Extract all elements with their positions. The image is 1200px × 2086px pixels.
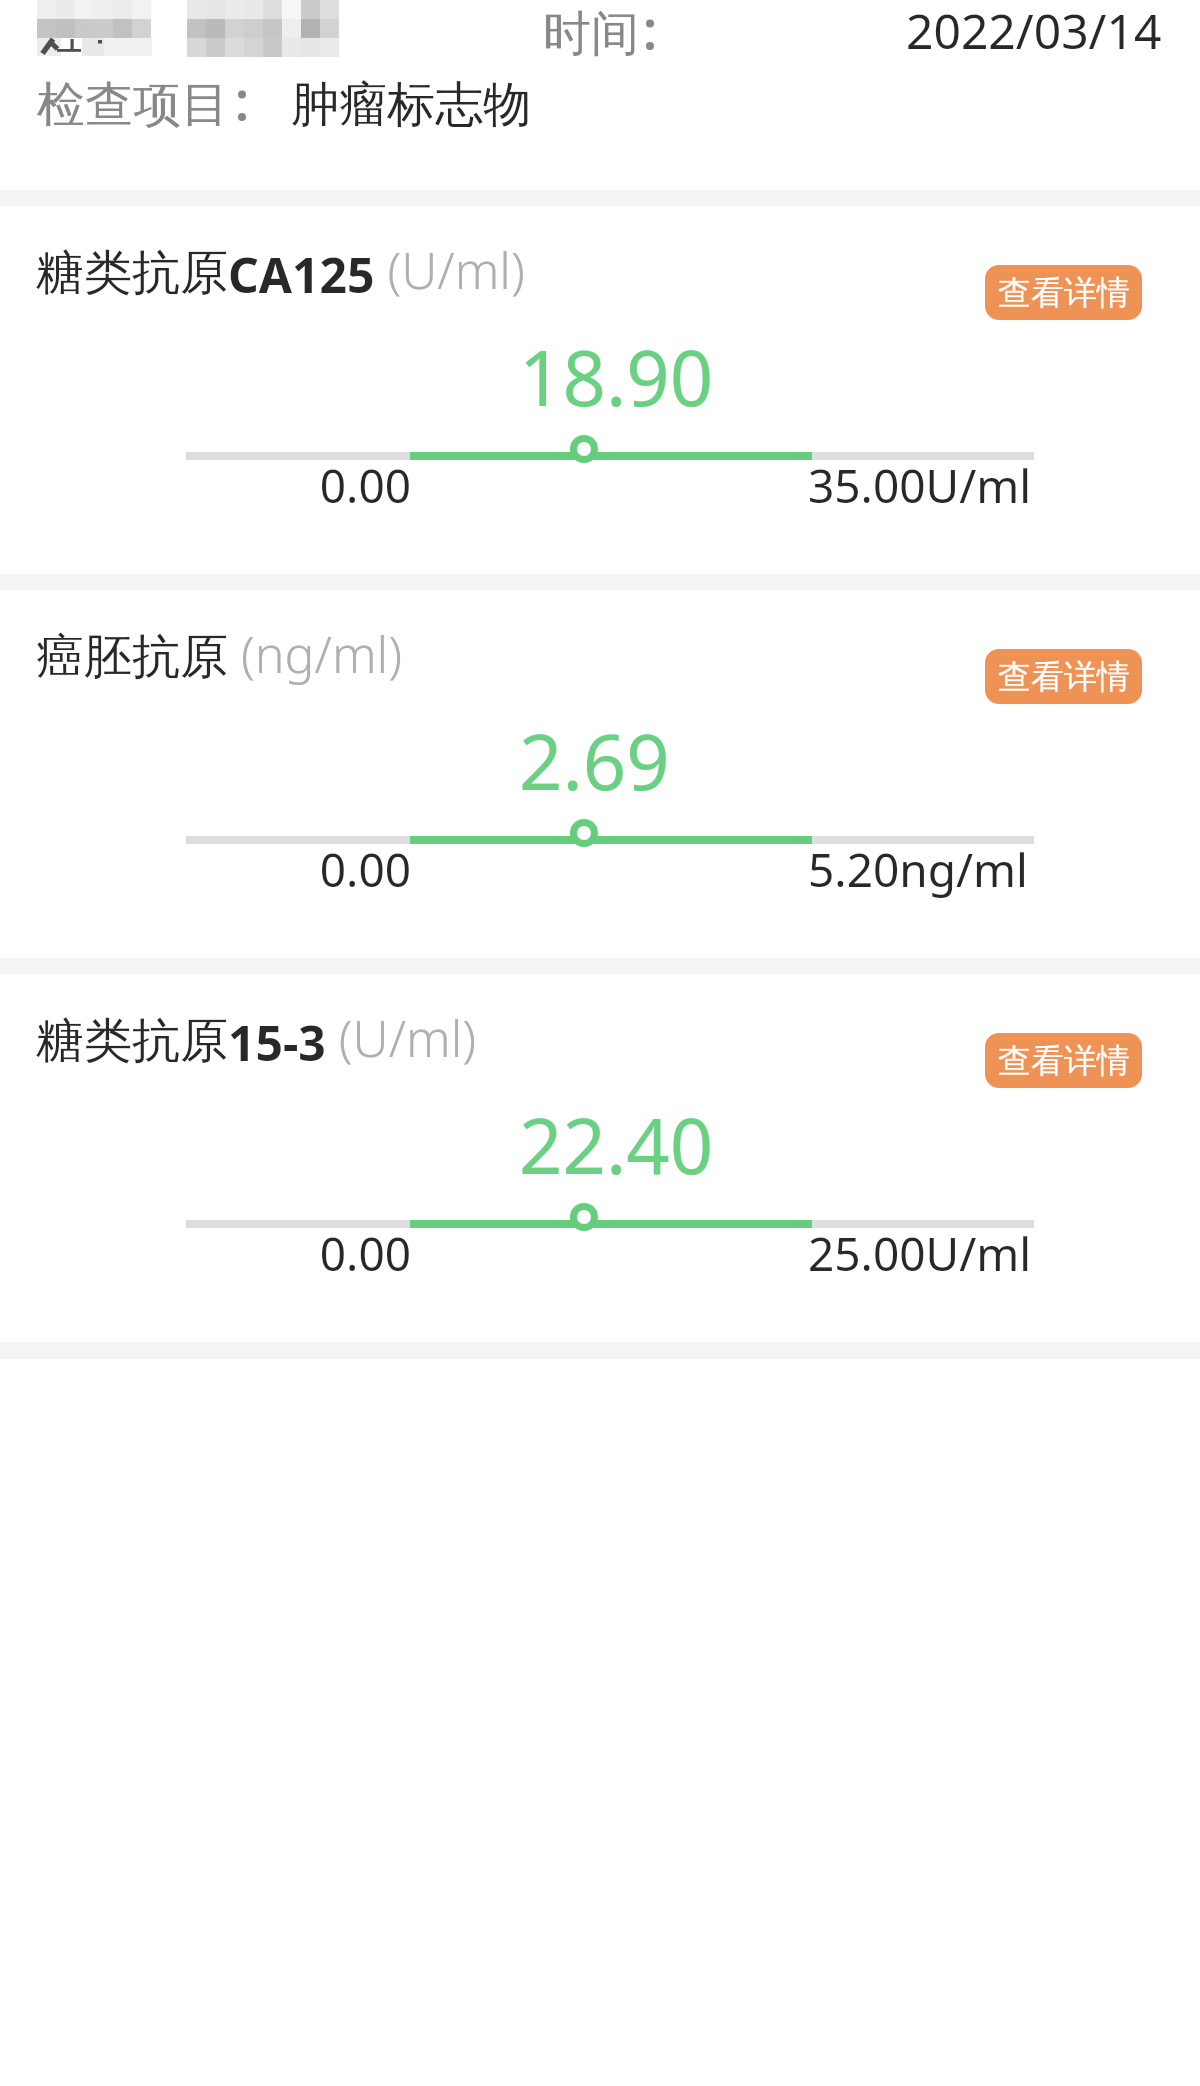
button[interactable]: 查看详情 <box>985 1033 1142 1088</box>
button[interactable]: 癌胚抗原 (ng/ml) <box>0 590 1200 958</box>
staticText: 5.20ng/ml <box>808 838 1028 901</box>
staticText: 0.00 <box>211 838 411 901</box>
staticText: 18.90 <box>519 325 714 429</box>
button[interactable]: 糖类抗原15-3 (U/ml) <box>0 974 1200 1342</box>
staticText: 0.00 <box>211 454 411 517</box>
staticText: 癌胚抗原 (ng/ml) <box>36 620 402 688</box>
staticText: 0.00 <box>211 1222 411 1285</box>
staticText: 时间 <box>543 4 639 64</box>
button[interactable]: 查看详情 <box>985 265 1142 320</box>
staticText: 肿瘤标志物 <box>291 75 531 135</box>
staticText: 2022/03/14 <box>906 0 1162 63</box>
staticText: 25.00U/ml <box>808 1222 1032 1285</box>
staticText: 查看详情 <box>998 272 1130 314</box>
staticText: 查看详情 <box>998 656 1130 698</box>
staticText: 糖类抗原15-3 (U/ml) <box>36 1004 477 1075</box>
button[interactable]: 查看详情 <box>985 649 1142 704</box>
staticText: 22.40 <box>519 1093 714 1197</box>
staticText: 2.69 <box>519 709 670 813</box>
staticText: 35.00U/ml <box>808 454 1032 517</box>
staticText: 检查项目 <box>37 75 229 135</box>
button[interactable]: 糖类抗原CA125 (U/ml) <box>0 206 1200 574</box>
staticText: 糖类抗原CA125 (U/ml) <box>36 236 525 307</box>
staticText: 查看详情 <box>998 1040 1130 1082</box>
